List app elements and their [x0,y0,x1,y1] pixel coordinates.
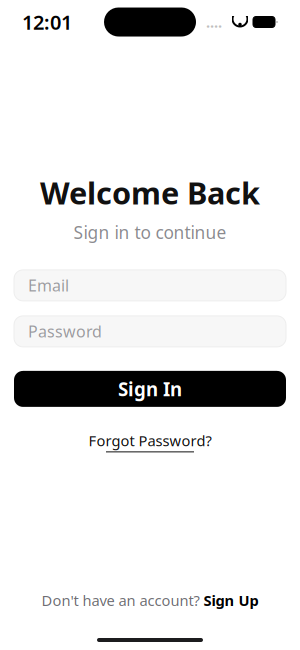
staticText: 12:01 [22,9,72,35]
staticText: Sign in to continue [73,221,226,244]
staticText: Welcome Back [40,172,260,213]
staticText: Forgot Password? [88,431,211,450]
button[interactable]: Don't have an account? [29,584,270,616]
staticText: Password [28,321,102,342]
staticText: Don't have an account? [41,590,199,610]
staticText: Email [28,275,69,296]
button[interactable]: Forgot Password? [78,427,221,456]
staticText: Sign In [118,376,182,401]
staticText: Sign Up [203,590,258,610]
button[interactable]: Sign In [14,371,286,407]
staticText: .... [206,12,222,32]
